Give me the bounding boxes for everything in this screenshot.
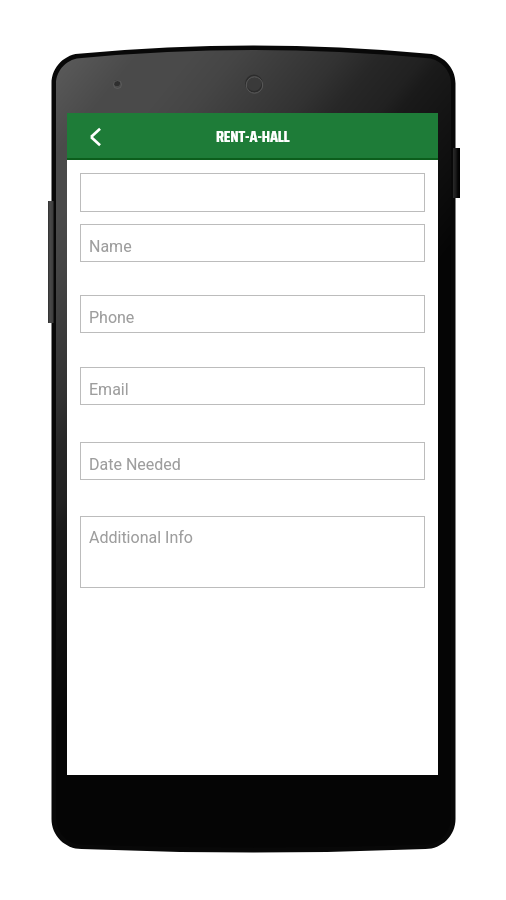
staticText: Additional Info [89,528,193,547]
staticText: Date Needed [89,455,181,474]
staticText: Phone [89,308,135,327]
button[interactable]: Date Needed [80,442,425,480]
button[interactable]: Additional Info [80,516,425,588]
staticText: Name [89,237,132,256]
button[interactable]: Email [80,367,425,405]
button[interactable]: Name [80,224,425,262]
staticText: RENT-A-HALL [216,124,290,149]
button[interactable]: Back [71,113,118,160]
staticText: Email [89,380,129,399]
button[interactable] [80,173,425,212]
button[interactable]: Phone [80,295,425,333]
